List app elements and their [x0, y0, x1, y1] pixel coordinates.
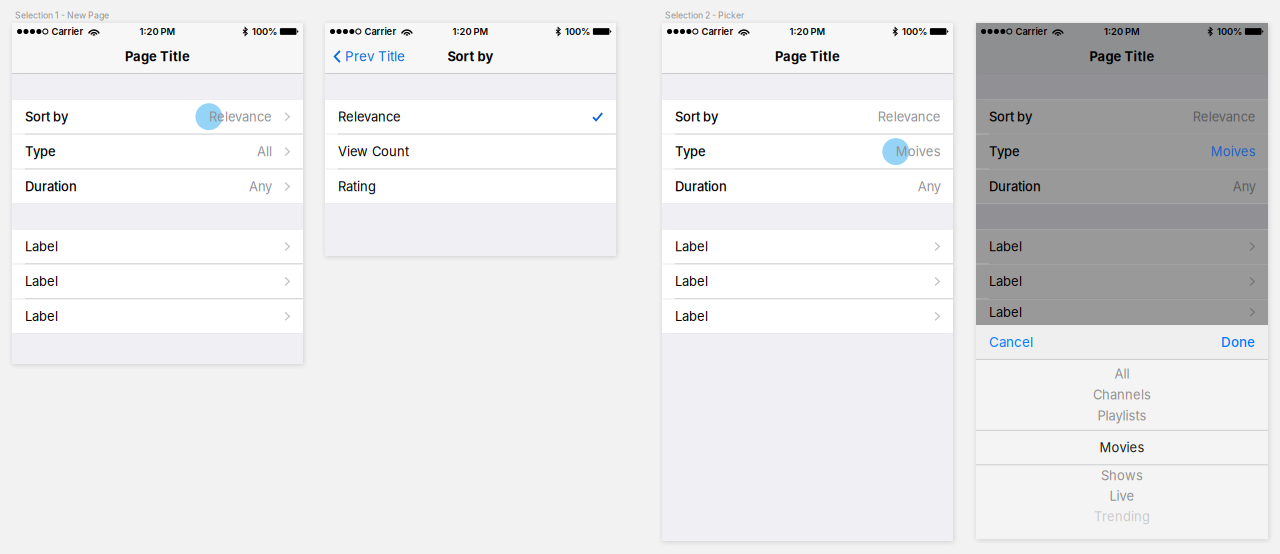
- staticText: Label: [25, 308, 58, 324]
- button[interactable]: View Count: [325, 135, 616, 169]
- staticText: Label: [25, 239, 58, 254]
- staticText: Selection 2 - Picker: [665, 10, 744, 20]
- button[interactable]: Done: [1209, 325, 1268, 359]
- button[interactable]: Cancel: [976, 325, 1045, 359]
- button[interactable]: Type: [662, 135, 953, 169]
- staticText: Any: [918, 179, 941, 194]
- staticText: Relevance: [878, 109, 941, 124]
- button[interactable]: Label: [12, 229, 303, 263]
- staticText: Type: [675, 144, 706, 159]
- staticText: Sort by: [25, 109, 68, 124]
- staticText: Duration: [25, 179, 77, 194]
- staticText: 100%: [1217, 26, 1242, 37]
- staticText: Moives: [896, 144, 941, 159]
- staticText: Selection 1 - New Page: [15, 10, 109, 20]
- staticText: Carrier: [364, 26, 396, 37]
- staticText: Carrier: [51, 26, 83, 37]
- staticText: Page Title: [775, 49, 840, 64]
- staticText: Relevance: [338, 109, 401, 124]
- staticText: Type: [25, 144, 56, 159]
- staticText: All: [1114, 366, 1129, 382]
- staticText: Relevance: [209, 109, 272, 124]
- staticText: Type: [989, 144, 1020, 159]
- button[interactable]: Label: [976, 264, 1268, 298]
- staticText: 1:20 PM: [452, 26, 488, 37]
- button[interactable]: Sort by: [662, 100, 953, 134]
- staticText: Label: [675, 239, 708, 254]
- staticText: Carrier: [1015, 26, 1047, 37]
- staticText: Label: [989, 304, 1022, 320]
- staticText: Page Title: [125, 49, 190, 64]
- button[interactable]: Duration: [12, 169, 303, 203]
- staticText: 1:20 PM: [139, 26, 175, 37]
- staticText: Label: [989, 274, 1022, 289]
- staticText: Playlists: [1097, 408, 1146, 424]
- button[interactable]: Prev Title: [325, 40, 413, 73]
- staticText: Label: [675, 308, 708, 324]
- button[interactable]: Rating: [325, 169, 616, 203]
- button[interactable]: Label: [12, 299, 303, 333]
- staticText: Rating: [338, 179, 376, 194]
- button[interactable]: Relevance: [325, 100, 616, 134]
- staticText: Any: [249, 179, 272, 194]
- staticText: Trending: [1094, 509, 1150, 524]
- staticText: Cancel: [989, 334, 1033, 350]
- staticText: Channels: [1093, 387, 1151, 403]
- staticText: 100%: [565, 26, 590, 37]
- button[interactable]: Label: [662, 299, 953, 333]
- button[interactable]: Label: [662, 264, 953, 298]
- button[interactable]: Sort by: [976, 100, 1268, 134]
- staticText: Duration: [675, 179, 727, 194]
- staticText: Sort by: [989, 109, 1032, 124]
- button[interactable]: Label: [976, 229, 1268, 263]
- staticText: Any: [1233, 179, 1256, 194]
- staticText: 100%: [902, 26, 927, 37]
- staticText: Sort by: [447, 49, 493, 64]
- staticText: Label: [989, 239, 1022, 254]
- staticText: Page Title: [1089, 49, 1154, 64]
- staticText: Prev Title: [345, 48, 405, 64]
- button[interactable]: Label: [12, 264, 303, 298]
- button[interactable]: Duration: [662, 169, 953, 203]
- staticText: Label: [675, 274, 708, 289]
- staticText: Relevance: [1193, 109, 1256, 124]
- button[interactable]: Label: [976, 299, 1268, 325]
- staticText: 1:20 PM: [1104, 26, 1140, 37]
- staticText: Sort by: [675, 109, 718, 124]
- button[interactable]: Type: [12, 135, 303, 169]
- staticText: View Count: [338, 144, 409, 159]
- staticText: 100%: [252, 26, 277, 37]
- staticText: Label: [25, 274, 58, 289]
- staticText: Done: [1221, 334, 1255, 350]
- staticText: 1:20 PM: [789, 26, 825, 37]
- button[interactable]: Label: [662, 229, 953, 263]
- staticText: Carrier: [701, 26, 733, 37]
- staticText: Live: [1109, 488, 1134, 504]
- button[interactable]: Type: [976, 135, 1268, 169]
- staticText: Shows: [1101, 468, 1143, 483]
- button[interactable]: Sort by: [12, 100, 303, 134]
- button[interactable]: Duration: [976, 169, 1268, 203]
- staticText: Movies: [1099, 440, 1144, 455]
- staticText: All: [257, 144, 272, 159]
- staticText: Duration: [989, 179, 1041, 194]
- staticText: Moives: [1211, 144, 1256, 159]
